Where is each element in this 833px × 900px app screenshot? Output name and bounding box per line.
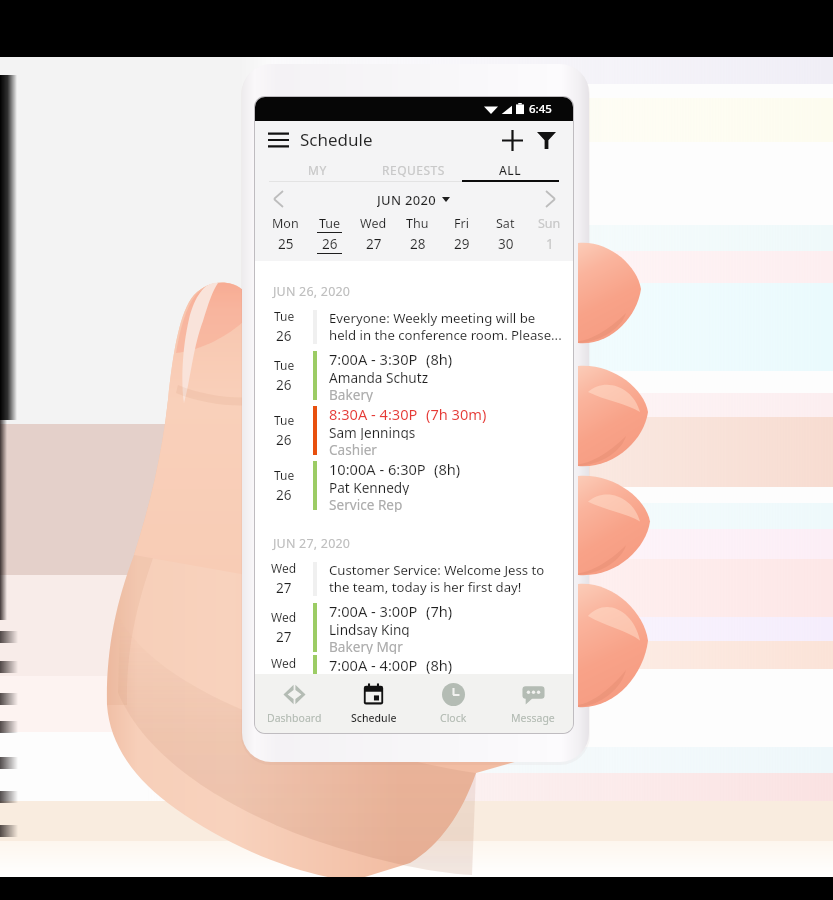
staticText: Dashboard xyxy=(267,711,322,725)
staticText: Everyone: Weekly meeting will be held in… xyxy=(329,309,565,344)
staticText: Customer Service: Welcome Jess to the te… xyxy=(329,561,565,596)
staticText: 26 xyxy=(276,486,292,504)
button[interactable]: Sat xyxy=(483,215,527,254)
button[interactable]: Wed xyxy=(255,655,573,674)
staticText: 7:00A - 3:30P xyxy=(329,349,418,368)
staticText: 6:45 xyxy=(529,101,552,117)
staticText: JUN 27, 2020 xyxy=(273,535,351,552)
staticText: JUN 2020 xyxy=(377,191,436,207)
staticText: Thu xyxy=(406,215,429,232)
staticText: 10:00A - 6:30P xyxy=(329,459,426,478)
staticText: Service Rep xyxy=(329,495,403,512)
button[interactable]: Add shift xyxy=(497,125,527,155)
staticText: Sun xyxy=(538,215,561,232)
button[interactable]: Mon xyxy=(263,215,307,254)
button[interactable]: Tue xyxy=(255,458,573,513)
button[interactable]: Sun xyxy=(527,215,571,254)
staticText: Cashier xyxy=(329,440,377,457)
staticText: 27 xyxy=(276,628,292,646)
staticText: 8:30A - 4:30P xyxy=(329,404,418,423)
staticText: Mon xyxy=(272,215,299,232)
staticText: ALL xyxy=(499,162,522,178)
button[interactable]: Clock xyxy=(413,674,493,733)
button[interactable]: Next week xyxy=(539,188,561,210)
staticText: 26 xyxy=(322,235,338,253)
staticText: Tue xyxy=(274,412,295,428)
button[interactable]: Tue xyxy=(255,305,573,348)
button[interactable]: MY xyxy=(269,158,365,182)
staticText: Bakery xyxy=(329,385,373,402)
staticText: Schedule xyxy=(351,711,397,725)
button[interactable]: Filter xyxy=(531,125,561,155)
staticText: Clock xyxy=(440,711,467,725)
button[interactable]: Tue xyxy=(307,215,351,254)
staticText: Tue xyxy=(319,215,341,232)
staticText: Lindsay King xyxy=(329,620,410,637)
button[interactable]: Schedule xyxy=(334,674,413,733)
staticText: 7:00A - 4:00P xyxy=(329,655,418,674)
staticText: Tue xyxy=(274,357,295,373)
staticText: 7:00A - 3:00P xyxy=(329,601,418,620)
staticText: Schedule xyxy=(300,128,373,151)
staticText: Sam Jennings xyxy=(329,423,416,440)
staticText: 28 xyxy=(410,235,426,253)
staticText: (8h) xyxy=(426,655,453,674)
staticText: Amanda Schutz xyxy=(329,368,429,385)
staticText: Wed xyxy=(271,560,297,576)
staticText: (8h) xyxy=(434,459,461,478)
button[interactable]: Tue xyxy=(255,348,573,403)
button[interactable]: Fri xyxy=(439,215,483,254)
staticText: JUN 26, 2020 xyxy=(273,283,351,300)
staticText: Pat Kennedy xyxy=(329,478,410,495)
button[interactable]: ALL xyxy=(462,158,559,182)
button[interactable]: Wed xyxy=(255,557,573,600)
button[interactable]: Wed xyxy=(351,215,395,254)
staticText: 26 xyxy=(276,431,292,449)
staticText: 26 xyxy=(276,376,292,394)
staticText: 30 xyxy=(498,235,514,253)
button[interactable]: JUN 2020 xyxy=(373,187,454,211)
button[interactable]: Open navigation menu xyxy=(268,127,294,153)
staticText: (7h 30m) xyxy=(426,404,487,423)
staticText: (8h) xyxy=(426,349,453,368)
staticText: 1 xyxy=(546,235,554,253)
staticText: Sat xyxy=(496,215,515,232)
staticText: MY xyxy=(308,162,327,178)
staticText: Bakery Mgr xyxy=(329,637,403,654)
staticText: 27 xyxy=(366,235,382,253)
button[interactable]: Thu xyxy=(395,215,439,254)
staticText: (7h) xyxy=(426,601,453,620)
staticText: 27 xyxy=(276,579,292,597)
button[interactable]: REQUESTS xyxy=(365,158,462,182)
staticText: Wed xyxy=(360,215,387,232)
button[interactable]: Previous week xyxy=(267,188,289,210)
staticText: 26 xyxy=(276,327,292,345)
staticText: Tue xyxy=(274,467,295,483)
staticText: Wed xyxy=(271,655,297,671)
staticText: REQUESTS xyxy=(382,162,445,178)
staticText: 25 xyxy=(278,235,294,253)
staticText: Fri xyxy=(454,215,469,232)
staticText: Message xyxy=(511,711,555,725)
button[interactable]: Wed xyxy=(255,600,573,655)
staticText: 29 xyxy=(454,235,470,253)
button[interactable]: Tue xyxy=(255,403,573,458)
staticText: Wed xyxy=(271,609,297,625)
staticText: Tue xyxy=(274,308,295,324)
button[interactable]: Dashboard xyxy=(255,674,334,733)
button[interactable]: Message xyxy=(493,674,573,733)
